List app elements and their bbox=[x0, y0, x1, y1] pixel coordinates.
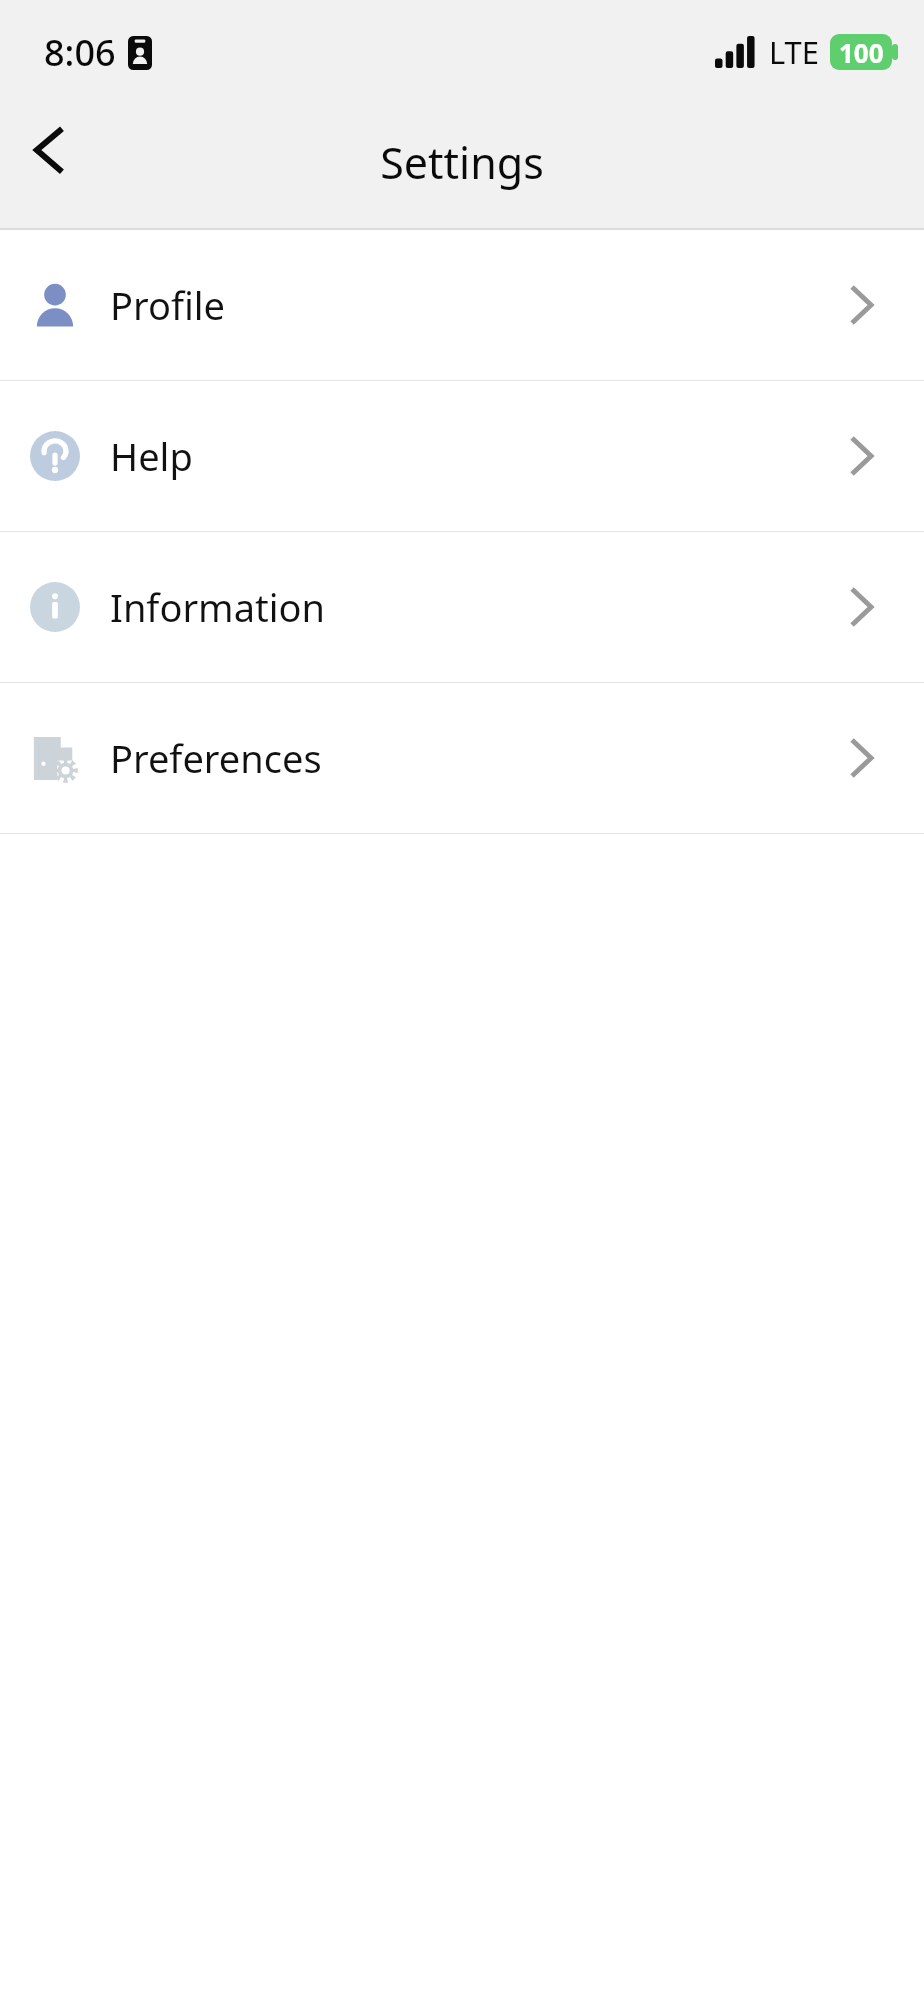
staticText: Information bbox=[110, 581, 325, 633]
staticText: Settings bbox=[380, 133, 544, 192]
staticText: 100 bbox=[839, 35, 884, 70]
staticText: Help bbox=[110, 430, 193, 482]
staticText: Profile bbox=[110, 279, 226, 331]
button[interactable]: Help bbox=[0, 381, 924, 531]
staticText: LTE bbox=[769, 31, 820, 73]
staticText: Preferences bbox=[110, 732, 322, 784]
button[interactable]: Preferences bbox=[0, 683, 924, 833]
button[interactable]: Profile bbox=[0, 230, 924, 380]
button[interactable]: Information bbox=[0, 532, 924, 682]
staticText: 8:06 bbox=[44, 28, 116, 77]
button[interactable]: Back bbox=[8, 108, 92, 192]
